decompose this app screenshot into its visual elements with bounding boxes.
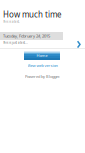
staticText: How much time [3,9,62,20]
button[interactable]: View web version [0,63,85,68]
staticText: View web version [27,63,57,68]
staticText: Home [36,53,47,58]
staticText: Powered by Blogger. [25,74,60,79]
staticText: This is a test. [3,20,20,23]
staticText: Tuesday, February 24, 2015 [3,33,50,39]
button[interactable]: Home [24,51,60,60]
staticText: This is just a test... [3,41,28,44]
button[interactable]: Older posts [75,40,83,49]
